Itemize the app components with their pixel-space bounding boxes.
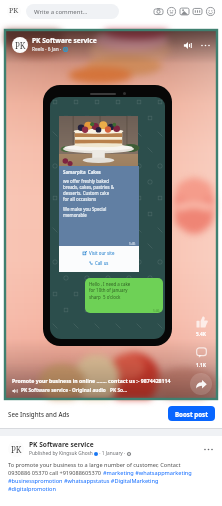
staticText: Call us	[95, 260, 109, 266]
staticText: Write a comment...	[34, 8, 88, 16]
button[interactable]: Avatar sticker	[165, 5, 178, 18]
staticText: #businesspromotion #whatsappstatus #Digi…	[8, 477, 159, 485]
button[interactable]: Write a comment...	[26, 4, 119, 19]
staticText: Published by Kingsuk Ghosh	[29, 450, 93, 457]
staticText: Reels · 6 Jan · 🌐	[32, 46, 69, 53]
staticText: Samarpita Cakes	[63, 169, 101, 175]
staticText: 0930886 05370 call +919088605370	[8, 469, 103, 477]
staticText: #marketing #whatsappmarketing	[103, 469, 192, 477]
button[interactable]: More options	[201, 442, 215, 456]
staticText: 5.4K	[196, 331, 207, 338]
staticText: 5:45	[129, 242, 136, 246]
staticText: We make you Special memorable	[63, 206, 107, 218]
staticText: 1.1K	[196, 362, 207, 369]
button[interactable]: Sound on	[180, 38, 194, 52]
staticText: PK	[9, 6, 19, 16]
staticText: Promote your business in online ....... …	[12, 377, 171, 384]
button[interactable]: Like	[192, 312, 211, 331]
button[interactable]: Sticker	[204, 5, 217, 18]
staticText: See Insights and Ads	[8, 410, 70, 418]
staticText: PK Software service · Original audio	[21, 387, 106, 394]
staticText: · 1 January ·	[98, 450, 127, 457]
staticText: PK So...	[110, 387, 128, 394]
button[interactable]: Call us	[89, 260, 109, 266]
button[interactable]: Photo	[178, 5, 191, 18]
button[interactable]: Share	[190, 373, 212, 395]
staticText: #digitalpromotion	[8, 485, 56, 493]
button[interactable]: Boost post	[168, 406, 215, 421]
button[interactable]: GIF	[191, 5, 204, 18]
staticText: Boost post	[175, 410, 208, 418]
button[interactable]: Camera	[152, 5, 165, 18]
staticText: PK Software service	[32, 36, 97, 45]
staticText: PK	[15, 40, 26, 51]
button[interactable]: Visit our site	[83, 250, 115, 256]
staticText: PK	[11, 444, 22, 455]
staticText: we offer freshly baked breads, cakes, pa…	[63, 178, 115, 202]
button[interactable]: More options	[198, 38, 212, 52]
staticText: Hello , I need a cake for 10th of januar…	[89, 281, 131, 300]
staticText: PK Software service	[29, 440, 94, 449]
staticText: Visit our site	[89, 250, 115, 256]
button[interactable]: Comment	[192, 343, 211, 362]
button[interactable]: See Insights and Ads	[8, 406, 70, 422]
staticText: 5:46	[153, 309, 160, 313]
staticText: To promote your business to a large numb…	[8, 461, 181, 469]
